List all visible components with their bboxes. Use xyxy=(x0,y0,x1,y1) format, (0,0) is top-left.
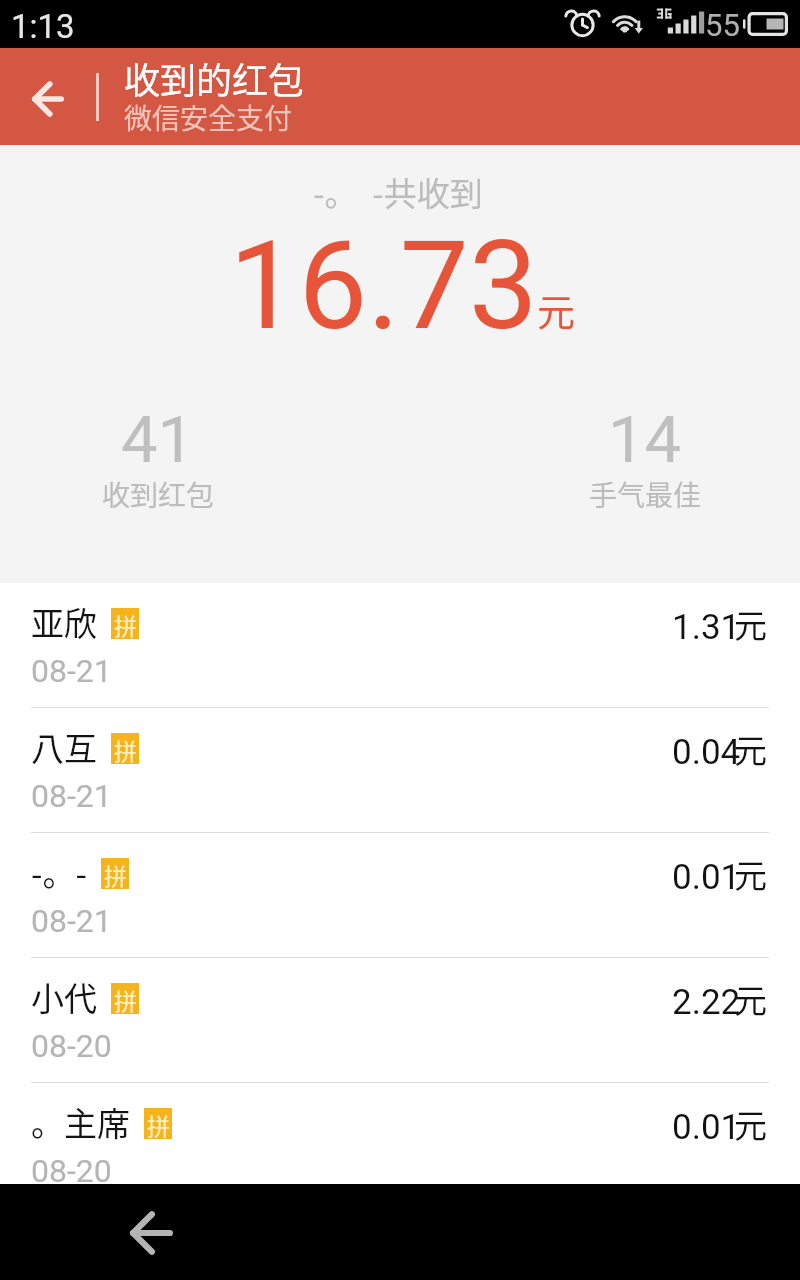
staticText: 14 xyxy=(608,402,682,478)
staticText: 微信安全支付 xyxy=(124,97,293,138)
staticText: 拼 xyxy=(104,858,127,889)
staticText: 八互 xyxy=(31,723,97,771)
staticText: 元 xyxy=(734,600,767,648)
staticText: 1.31 xyxy=(672,607,741,648)
staticText: 元 xyxy=(734,975,767,1023)
staticText: 拼 xyxy=(147,1108,170,1139)
staticText: 08-21 xyxy=(31,902,112,940)
staticText: 小代 xyxy=(31,973,97,1021)
other: Signal xyxy=(656,6,698,38)
staticText: 41 xyxy=(121,402,195,478)
staticText: -。 -共收到 xyxy=(313,168,483,216)
staticText: -。- xyxy=(31,848,87,896)
staticText: 0.01 xyxy=(672,857,741,898)
staticText: 55 xyxy=(705,7,740,43)
staticText: 亚欣 xyxy=(31,598,97,646)
staticText: 拼 xyxy=(114,983,137,1014)
staticText: 08-21 xyxy=(31,777,112,815)
button[interactable]: 小代 xyxy=(0,958,800,1082)
staticText: 元 xyxy=(537,282,576,337)
staticText: 08-20 xyxy=(31,1152,112,1190)
button[interactable]: 亚欣 xyxy=(0,583,800,707)
button[interactable]: Back xyxy=(0,48,96,145)
staticText: 元 xyxy=(734,850,767,898)
button[interactable]: 。主席 xyxy=(0,1083,800,1207)
staticText: 拼 xyxy=(114,733,137,764)
staticText: 元 xyxy=(734,1100,767,1148)
staticText: 1:13 xyxy=(11,7,75,46)
staticText: 手气最佳 xyxy=(589,474,702,515)
staticText: 08-20 xyxy=(31,1027,112,1065)
staticText: 元 xyxy=(734,725,767,773)
other: Alarm xyxy=(566,7,599,37)
other: Wi-Fi xyxy=(610,8,646,38)
staticText: 收到的红包 xyxy=(124,52,305,104)
button[interactable]: Back xyxy=(107,1185,195,1280)
button[interactable]: -。- xyxy=(0,833,800,957)
staticText: 0.04 xyxy=(672,732,741,773)
staticText: 收到红包 xyxy=(102,474,215,515)
staticText: 08-21 xyxy=(31,652,112,690)
button[interactable]: 八互 xyxy=(0,708,800,832)
staticText: 。主席 xyxy=(31,1098,130,1146)
staticText: 2.22 xyxy=(672,982,741,1023)
staticText: 16.73 xyxy=(229,214,538,358)
other: Battery xyxy=(743,12,788,36)
staticText: 拼 xyxy=(114,608,137,639)
staticText: 0.01 xyxy=(672,1107,741,1148)
